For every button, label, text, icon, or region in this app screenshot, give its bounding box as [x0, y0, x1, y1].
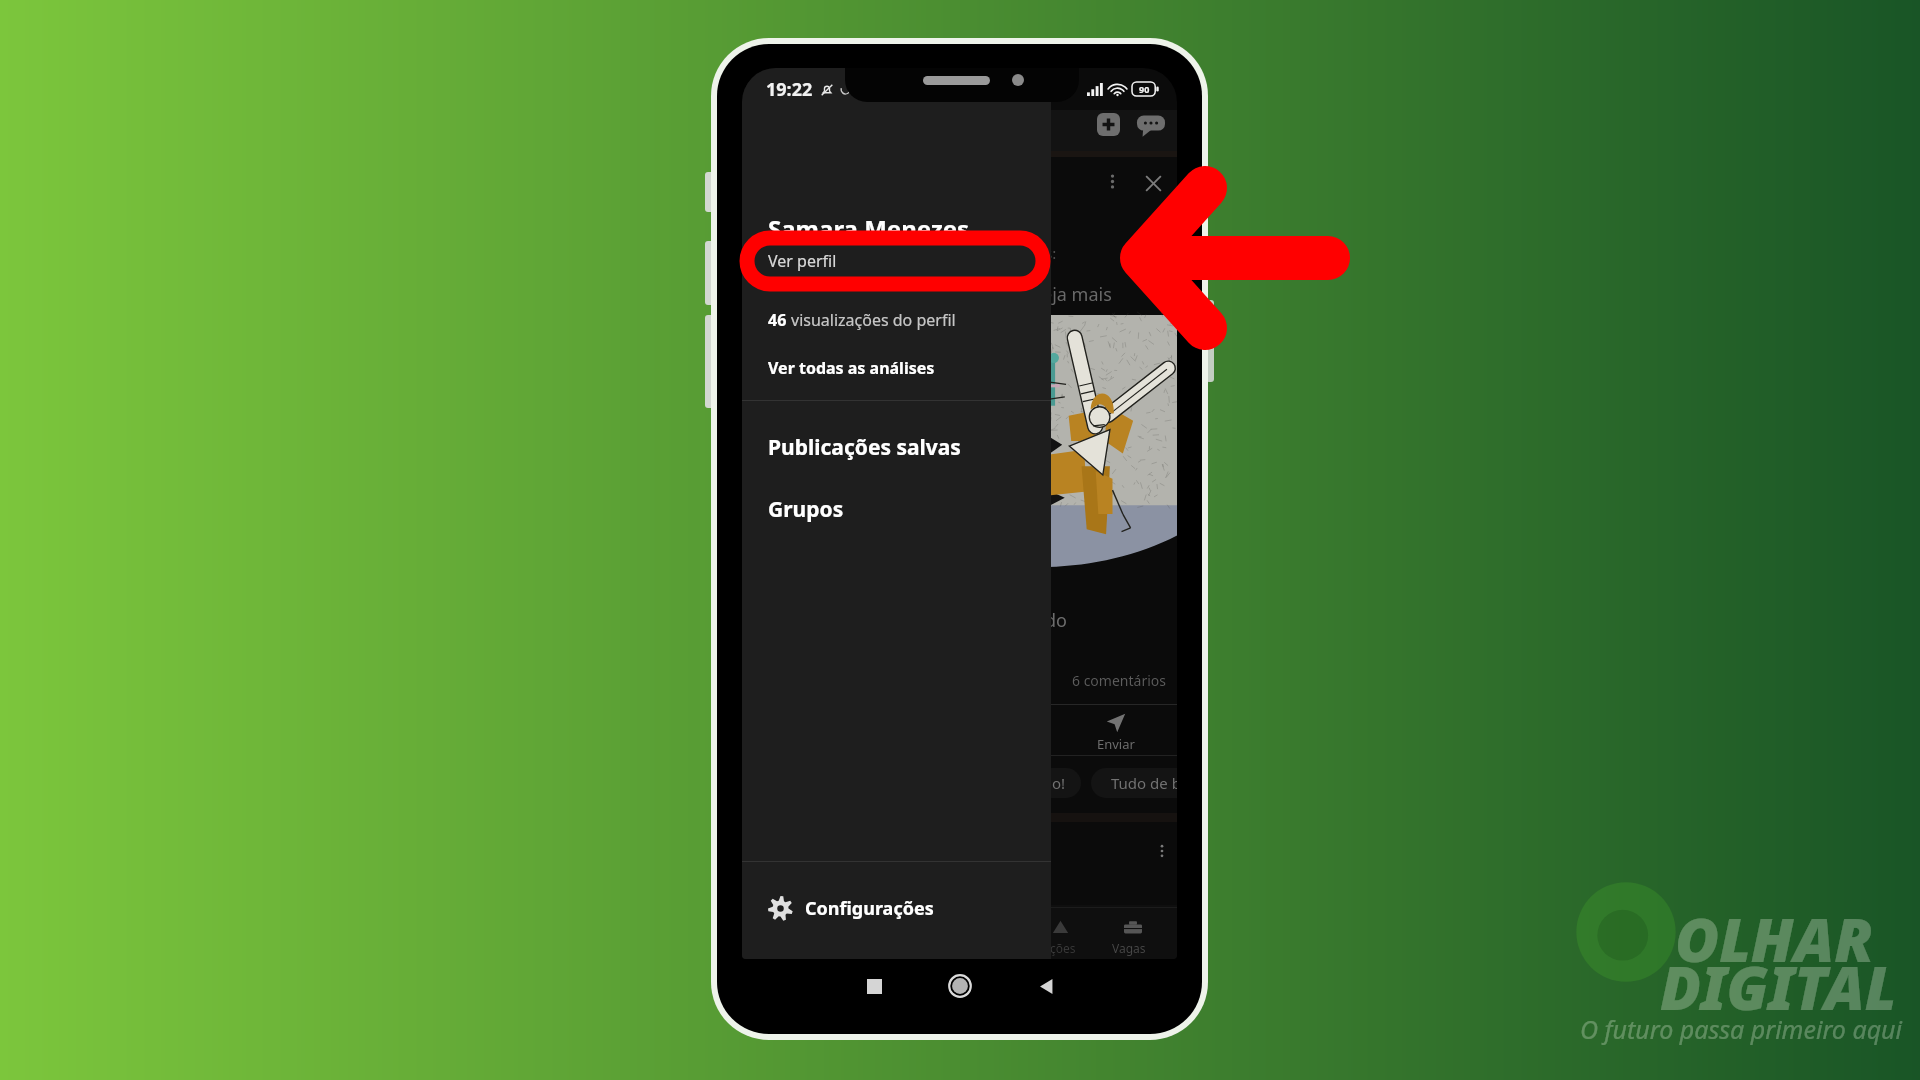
staticText: Samara Menezes — [768, 212, 970, 245]
staticText: OLHAR — [1675, 898, 1874, 980]
staticText: Tudo de b — [1111, 773, 1177, 793]
button[interactable]: Volume down — [705, 315, 714, 408]
button[interactable]: Notifications — [1052, 919, 1069, 936]
staticText: 6 comentários — [1072, 671, 1166, 690]
staticText: Grupos — [768, 495, 844, 524]
button[interactable]: o! — [1037, 768, 1081, 798]
staticText: s: — [1045, 243, 1057, 263]
button[interactable]: Close — [1142, 172, 1165, 195]
button[interactable]: Publicações salvas — [742, 425, 1051, 469]
button[interactable]: Post — [1097, 113, 1120, 136]
staticText: eja mais — [1042, 282, 1112, 307]
button[interactable]: Ver perfil — [742, 244, 1051, 278]
button[interactable]: Grupos — [742, 487, 1051, 531]
button[interactable]: Home — [943, 969, 977, 1003]
button[interactable]: Configurações — [742, 883, 1051, 933]
staticText: Ver todas as análises — [768, 357, 935, 379]
button[interactable]: Volume up — [705, 241, 714, 305]
button[interactable]: Recents — [857, 969, 891, 1003]
staticText: DIGITAL — [1660, 946, 1897, 1028]
staticText: o! — [1052, 773, 1066, 793]
button[interactable]: Back — [1029, 969, 1063, 1003]
button[interactable]: Ver todas as análises — [742, 352, 1051, 384]
staticText: Configurações — [805, 896, 934, 921]
button[interactable]: Jobs — [1124, 919, 1142, 937]
button[interactable]: Messages — [1137, 111, 1165, 139]
staticText: Enviar — [1097, 735, 1135, 753]
staticText: 46 — [768, 309, 791, 331]
staticText: Ver perfil — [768, 250, 837, 272]
staticText: do — [1045, 608, 1067, 633]
button[interactable]: Enviar — [1090, 713, 1142, 753]
staticText: O futuro passa primeiro aqui — [1580, 1012, 1903, 1046]
staticText: Publicações salvas — [768, 433, 961, 462]
button[interactable]: Vagas — [1112, 940, 1146, 956]
button[interactable]: Tudo de b — [1091, 768, 1177, 798]
staticText: 19:22 — [766, 77, 813, 102]
staticText: 90 — [1139, 83, 1150, 95]
button[interactable]: ções — [1050, 940, 1076, 956]
staticText: visualizações do perfil — [791, 309, 956, 331]
button[interactable]: Silent mode switch — [705, 172, 714, 212]
button[interactable]: 46 — [742, 304, 1051, 336]
button[interactable]: More options — [1105, 174, 1120, 189]
button[interactable]: Power — [1206, 300, 1214, 382]
